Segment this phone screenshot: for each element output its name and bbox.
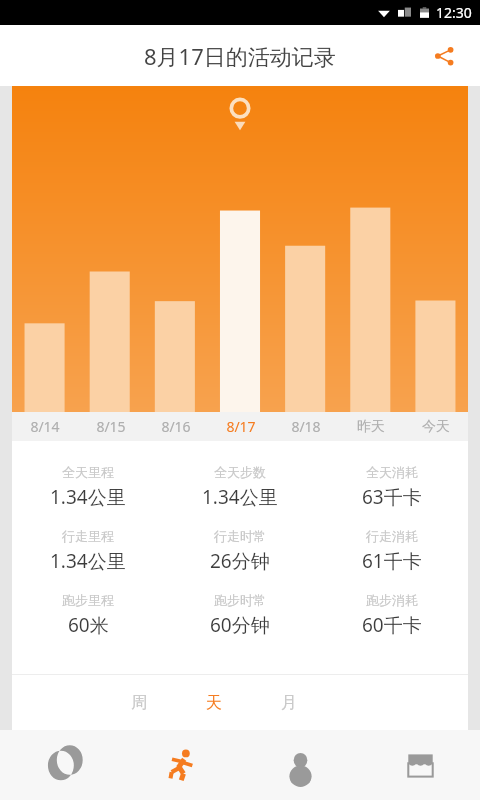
staticText: 跑步里程 [62, 592, 114, 608]
staticText: 63千卡 [362, 484, 422, 510]
button[interactable]: 行走消耗 [316, 528, 468, 574]
staticText: 全天消耗 [366, 464, 418, 480]
staticText: 60米 [68, 612, 109, 638]
staticText: 全天里程 [62, 464, 114, 480]
staticText: 天 [206, 693, 222, 713]
button[interactable]: 跑步时常 [164, 592, 316, 638]
button[interactable]: 行走时常 [164, 528, 316, 574]
button[interactable]: 全天步数 [164, 464, 316, 510]
button[interactable]: 8/17 [208, 412, 273, 441]
staticText: 8/14 [30, 417, 60, 436]
staticText: 8月17日的活动记录 [144, 41, 336, 71]
button[interactable]: Share [422, 34, 466, 78]
staticText: 跑步消耗 [366, 592, 418, 608]
button[interactable]: 昨天 [338, 412, 403, 441]
staticText: 1.34公里 [202, 484, 278, 510]
staticText: 今天 [422, 418, 450, 436]
staticText: 行走里程 [62, 528, 114, 544]
button[interactable]: Profile [240, 730, 360, 800]
button[interactable]: 8/18 [273, 412, 338, 441]
button[interactable]: 天 [176, 675, 251, 730]
button[interactable]: 行走里程 [12, 528, 164, 574]
staticText: 8/18 [291, 417, 321, 436]
staticText: 周 [131, 693, 147, 713]
staticText: 行走消耗 [366, 528, 418, 544]
staticText: 全天步数 [214, 464, 266, 480]
button[interactable]: Activity [120, 730, 240, 800]
button[interactable]: 8/14 [12, 412, 78, 441]
button[interactable]: 跑步里程 [12, 592, 164, 638]
staticText: 跑步时常 [214, 592, 266, 608]
staticText: 8/15 [96, 417, 126, 436]
button[interactable]: 全天消耗 [316, 464, 468, 510]
button[interactable]: 8/15 [78, 412, 143, 441]
staticText: 26分钟 [210, 548, 270, 574]
staticText: 61千卡 [362, 548, 422, 574]
staticText: 60千卡 [362, 612, 422, 638]
button[interactable]: 全天里程 [12, 464, 164, 510]
button[interactable]: 今天 [403, 412, 468, 441]
button[interactable]: Store [360, 730, 480, 800]
staticText: 月 [281, 693, 297, 713]
staticText: 60分钟 [210, 612, 270, 638]
button[interactable]: Sleep [0, 730, 120, 800]
button[interactable]: 8/16 [143, 412, 208, 441]
button[interactable]: 周 [101, 675, 176, 730]
staticText: 昨天 [357, 418, 385, 436]
staticText: 8/16 [161, 417, 191, 436]
staticText: 8/17 [226, 417, 256, 436]
button[interactable]: 跑步消耗 [316, 592, 468, 638]
staticText: 1.34公里 [50, 484, 126, 510]
staticText: 行走时常 [214, 528, 266, 544]
button[interactable]: 月 [251, 675, 326, 730]
staticText: 12:30 [436, 3, 472, 22]
staticText: 1.34公里 [50, 548, 126, 574]
